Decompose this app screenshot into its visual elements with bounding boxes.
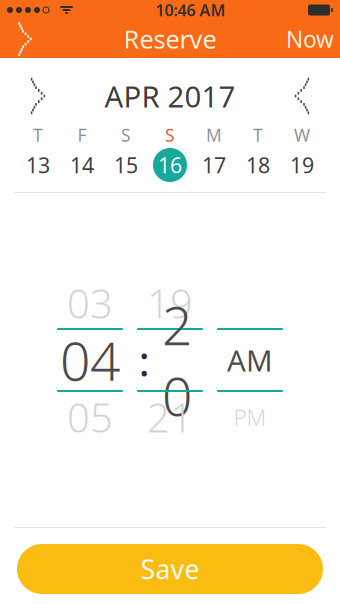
staticText: 14 xyxy=(70,151,94,179)
button[interactable]: 13 xyxy=(16,146,60,184)
button[interactable]: : xyxy=(137,330,203,390)
staticText: 17 xyxy=(202,151,226,179)
staticText: 13 xyxy=(26,151,50,179)
button[interactable]: 18 xyxy=(236,146,280,184)
staticText: S xyxy=(121,123,131,146)
staticText: 21 xyxy=(147,390,193,443)
staticText: Now xyxy=(286,24,334,54)
staticText: 04 xyxy=(60,325,120,395)
staticText: T xyxy=(33,123,43,146)
staticText: : xyxy=(138,332,149,388)
button[interactable]: 16 xyxy=(148,146,192,184)
button[interactable]: Save xyxy=(17,544,323,594)
button[interactable]: Now xyxy=(280,20,340,58)
staticText: W xyxy=(294,123,310,146)
button[interactable]: 14 xyxy=(60,146,104,184)
button[interactable]: Back xyxy=(0,20,46,58)
staticText: M xyxy=(206,123,222,146)
staticText: 03 xyxy=(67,276,113,329)
staticText: 16 xyxy=(158,151,182,179)
button[interactable]: AM xyxy=(217,330,283,390)
staticText: 05 xyxy=(67,390,113,443)
button[interactable]: 17 xyxy=(192,146,236,184)
staticText: 19 xyxy=(147,276,193,329)
staticText: 19 xyxy=(290,151,314,179)
staticText: 10:46 AM xyxy=(155,0,225,21)
button[interactable]: 04 xyxy=(57,330,123,390)
staticText: Reserve xyxy=(123,22,216,56)
button[interactable]: Next month xyxy=(268,74,340,118)
staticText: Save xyxy=(140,551,199,587)
button[interactable]: Previous month xyxy=(0,74,72,118)
staticText: 15 xyxy=(114,151,138,179)
staticText: AM xyxy=(227,340,273,379)
staticText: APR 2017 xyxy=(104,76,235,115)
staticText: T xyxy=(253,123,263,146)
staticText: S xyxy=(165,123,175,146)
button[interactable]: 19 xyxy=(280,146,324,184)
button[interactable]: 15 xyxy=(104,146,148,184)
staticText: F xyxy=(77,123,86,146)
staticText: PM xyxy=(233,402,266,432)
staticText: 20 xyxy=(162,289,192,431)
staticText: 18 xyxy=(246,151,270,179)
